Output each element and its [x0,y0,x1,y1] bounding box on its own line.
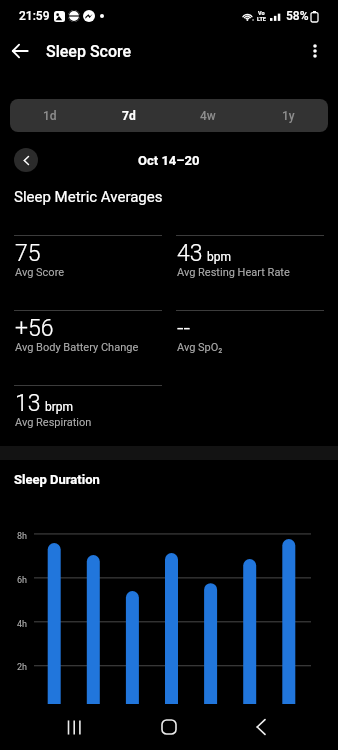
staticText: Sleep Duration [14,472,100,487]
staticText: Avg Resting Heart Rate [177,266,290,279]
button[interactable]: Back [6,37,34,65]
staticText: Avg Score [15,266,65,279]
staticText: 21:59 [19,9,50,23]
staticText: 6h [17,575,28,586]
staticText: LTE [257,16,266,22]
staticText: 1y [282,109,295,123]
staticText: Avg Body Battery Change [15,341,139,354]
staticText: Sleep Metric Averages [14,188,163,206]
staticText: 58% [286,9,309,23]
staticText: 4w [200,109,216,123]
button[interactable]: 7d [89,99,168,132]
button[interactable]: Home [154,712,184,742]
button[interactable]: Recent apps [58,712,88,742]
staticText: brpm [45,400,74,414]
staticText: Sleep Score [46,42,132,61]
staticText: Vo [258,10,265,16]
staticText: Oct 14–20 [138,153,200,168]
staticText: 2h [17,662,28,673]
staticText: 13 [15,390,41,417]
button[interactable]: Previous week [14,148,38,172]
staticText: 1d [43,109,57,123]
staticText: +56 [15,315,54,342]
button[interactable]: 1d [10,99,89,132]
staticText: 43 [177,240,203,267]
staticText: -- [177,315,191,342]
staticText: 8h [17,531,28,542]
staticText: Avg SpO₂ [177,341,223,354]
button[interactable]: More options [304,40,326,62]
staticText: 4h [17,619,28,630]
staticText: 7d [122,109,136,123]
staticText: bpm [207,250,231,264]
staticText: Avg Respiration [15,416,92,429]
staticText: 75 [15,240,41,267]
button[interactable]: 4w [168,99,248,132]
button[interactable]: 1y [248,99,328,132]
button[interactable]: Back [246,712,276,742]
